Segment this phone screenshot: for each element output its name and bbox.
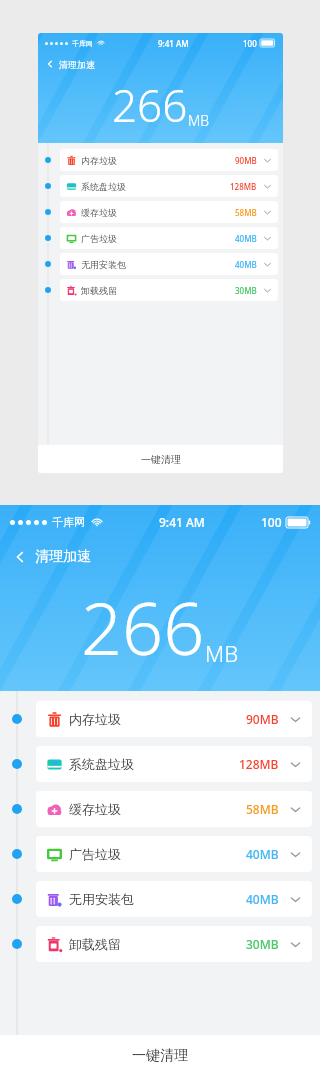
staticText: 内存垃圾 — [69, 711, 121, 727]
staticText: 40MB — [246, 891, 279, 907]
other: Expand — [289, 893, 302, 906]
button[interactable]: 内存垃圾 — [60, 149, 278, 171]
staticText: 128MB — [230, 181, 257, 192]
staticText: MB — [188, 111, 210, 130]
staticText: 90MB — [235, 155, 257, 166]
staticText: 卸载残留 — [69, 936, 121, 952]
staticText: 9:41 AM — [158, 38, 189, 49]
staticText: 128MB — [239, 756, 279, 772]
staticText: 千库网 — [52, 515, 85, 529]
other: Expand — [263, 182, 272, 191]
staticText: 内存垃圾 — [81, 155, 117, 166]
staticText: 100 — [261, 514, 282, 530]
button[interactable]: Back — [0, 539, 91, 575]
staticText: 系统盘垃圾 — [69, 756, 134, 772]
staticText: 9:41 AM — [159, 514, 205, 530]
staticText: 无用安装包 — [81, 259, 126, 270]
staticText: 30MB — [246, 936, 279, 952]
staticText: 58MB — [246, 801, 279, 817]
staticText: 40MB — [246, 846, 279, 862]
staticText: 40MB — [235, 259, 257, 270]
staticText: 千库网 — [72, 39, 93, 48]
staticText: 一键清理 — [132, 1047, 188, 1065]
button[interactable]: 系统盘垃圾 — [60, 175, 278, 197]
other: Expand — [263, 208, 272, 217]
staticText: 266 — [112, 75, 188, 135]
staticText: 广告垃圾 — [69, 846, 121, 862]
staticText: 清理加速 — [59, 59, 95, 70]
other: Expand — [289, 713, 302, 726]
staticText: 无用安装包 — [69, 891, 134, 907]
staticText: 40MB — [235, 233, 257, 244]
staticText: 266 — [81, 578, 205, 676]
other: Expand — [263, 260, 272, 269]
button[interactable]: 内存垃圾 — [36, 701, 312, 737]
staticText: 缓存垃圾 — [81, 207, 117, 218]
other: Expand — [263, 156, 272, 165]
other: Expand — [289, 938, 302, 951]
staticText: 58MB — [235, 207, 257, 218]
button[interactable]: 缓存垃圾 — [60, 201, 278, 223]
other: Expand — [289, 803, 302, 816]
staticText: MB — [205, 638, 239, 668]
other: Expand — [289, 758, 302, 771]
button[interactable]: 无用安装包 — [36, 881, 312, 917]
staticText: 100 — [243, 38, 257, 49]
other: Back — [12, 549, 28, 565]
button[interactable]: Back — [38, 53, 95, 75]
other: Expand — [289, 848, 302, 861]
staticText: 90MB — [246, 711, 279, 727]
staticText: 一键清理 — [141, 453, 181, 466]
button[interactable]: 系统盘垃圾 — [36, 746, 312, 782]
staticText: 缓存垃圾 — [69, 801, 121, 817]
staticText: 清理加速 — [35, 548, 91, 566]
button[interactable]: 无用安装包 — [60, 253, 278, 275]
staticText: 卸载残留 — [81, 285, 117, 296]
button[interactable]: 一键清理 — [38, 445, 283, 473]
button[interactable]: 广告垃圾 — [36, 836, 312, 872]
staticText: 系统盘垃圾 — [81, 181, 126, 192]
button[interactable]: 广告垃圾 — [60, 227, 278, 249]
button[interactable]: 卸载残留 — [60, 279, 278, 301]
button[interactable]: 一键清理 — [0, 1035, 320, 1076]
button[interactable]: 缓存垃圾 — [36, 791, 312, 827]
staticText: 广告垃圾 — [81, 233, 117, 244]
other: Expand — [263, 234, 272, 243]
other: Expand — [263, 286, 272, 295]
staticText: 30MB — [235, 285, 257, 296]
other: Back — [45, 59, 55, 69]
button[interactable]: 卸载残留 — [36, 926, 312, 962]
